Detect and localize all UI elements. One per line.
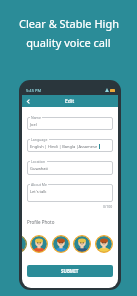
button[interactable]: Profile photo option <box>52 235 70 253</box>
staticText: SUBMIT <box>61 268 79 274</box>
button[interactable]: SUBMIT <box>27 265 113 277</box>
button[interactable]: Back <box>22 95 34 107</box>
staticText: Profile Photo <box>27 219 55 225</box>
staticText: Name <box>31 115 41 120</box>
staticText: Let's talk <box>30 189 47 194</box>
button[interactable]: Profile photo option <box>95 235 113 253</box>
staticText: Edit <box>65 98 75 105</box>
staticText: 0/100 <box>103 204 113 209</box>
button[interactable]: Profile photo option <box>73 235 91 253</box>
staticText: quality voice call <box>26 35 111 50</box>
staticText: Joel <box>30 122 37 127</box>
staticText: About Me <box>31 182 47 187</box>
staticText: 5:45 PM <box>26 88 42 93</box>
staticText: English | Hindi | Bangla |Assamese <box>30 144 98 149</box>
staticText: Location <box>31 159 46 164</box>
button[interactable]: Profile photo option <box>22 235 27 253</box>
staticText: Language <box>31 137 48 142</box>
button[interactable]: Profile photo option <box>30 235 48 253</box>
staticText: Clear & Stable High <box>19 16 119 31</box>
staticText: Guwahati <box>30 166 48 171</box>
